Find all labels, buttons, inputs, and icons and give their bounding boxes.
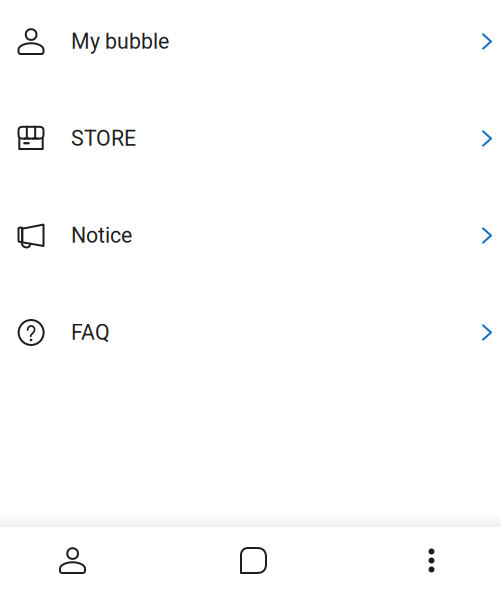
button[interactable]: Notice bbox=[0, 187, 501, 284]
button[interactable]: FAQ bbox=[0, 284, 501, 381]
button[interactable]: My bubble bbox=[0, 527, 145, 591]
staticText: STORE bbox=[71, 126, 136, 151]
staticText: FAQ bbox=[71, 320, 110, 345]
staticText: Notice bbox=[71, 223, 132, 248]
button[interactable]: My bubble bbox=[0, 0, 501, 90]
button[interactable]: STORE bbox=[0, 90, 501, 187]
staticText: My bubble bbox=[71, 29, 169, 54]
button[interactable]: More bbox=[362, 527, 501, 591]
button[interactable]: Chat bbox=[145, 527, 362, 591]
